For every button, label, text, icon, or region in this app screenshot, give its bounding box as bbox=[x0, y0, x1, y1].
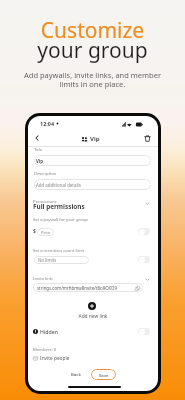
staticText: Full permissions bbox=[33, 202, 85, 211]
button[interactable]: strings.com/mrhbmw8nvite/t8o9OXD9 bbox=[33, 283, 143, 292]
staticText: Description bbox=[34, 171, 57, 177]
staticText: Back bbox=[71, 371, 81, 377]
button[interactable]: Save bbox=[91, 369, 116, 380]
staticText: Customize bbox=[0, 16, 185, 45]
staticText: Set a paywall for your group bbox=[33, 217, 88, 223]
button[interactable]: Toggle bbox=[138, 328, 150, 335]
staticText: Invite link: bbox=[33, 276, 54, 282]
button[interactable]: Back bbox=[67, 368, 85, 380]
staticText: Price bbox=[41, 230, 51, 235]
button[interactable]: Add new link bbox=[88, 302, 96, 310]
staticText: Invite people bbox=[40, 355, 70, 362]
button[interactable]: Delete bbox=[141, 132, 153, 144]
button[interactable]: Vip bbox=[34, 155, 151, 166]
staticText: Add additional details bbox=[36, 182, 81, 188]
staticText: Add new link bbox=[28, 313, 158, 320]
staticText: Vip bbox=[90, 135, 100, 143]
button[interactable]: No limits bbox=[34, 256, 89, 264]
staticText: Title bbox=[34, 147, 43, 153]
staticText: 12:04 bbox=[40, 120, 55, 127]
staticText: Add paywalls, invite links, and member l… bbox=[0, 70, 185, 90]
staticText: your group bbox=[0, 36, 185, 65]
staticText: Set a members count limit bbox=[33, 248, 85, 254]
staticText: strings.com/mrhbmw8nvite/t8o9OXD9 bbox=[37, 285, 117, 291]
staticText: Save bbox=[99, 372, 109, 378]
button[interactable]: Toggle bbox=[138, 228, 150, 235]
button[interactable]: Add additional details bbox=[34, 179, 151, 190]
button[interactable]: Invite people bbox=[33, 355, 70, 362]
staticText: Hidden bbox=[40, 328, 58, 335]
staticText: No limits bbox=[38, 257, 57, 263]
staticText: $ bbox=[33, 228, 36, 235]
staticText: Permissions bbox=[33, 199, 57, 205]
staticText: Members: 0 bbox=[33, 347, 57, 353]
button[interactable]: Price bbox=[37, 228, 54, 236]
staticText: Vip bbox=[36, 158, 43, 164]
button[interactable]: Toggle bbox=[138, 256, 150, 263]
button[interactable]: Back bbox=[31, 132, 43, 144]
